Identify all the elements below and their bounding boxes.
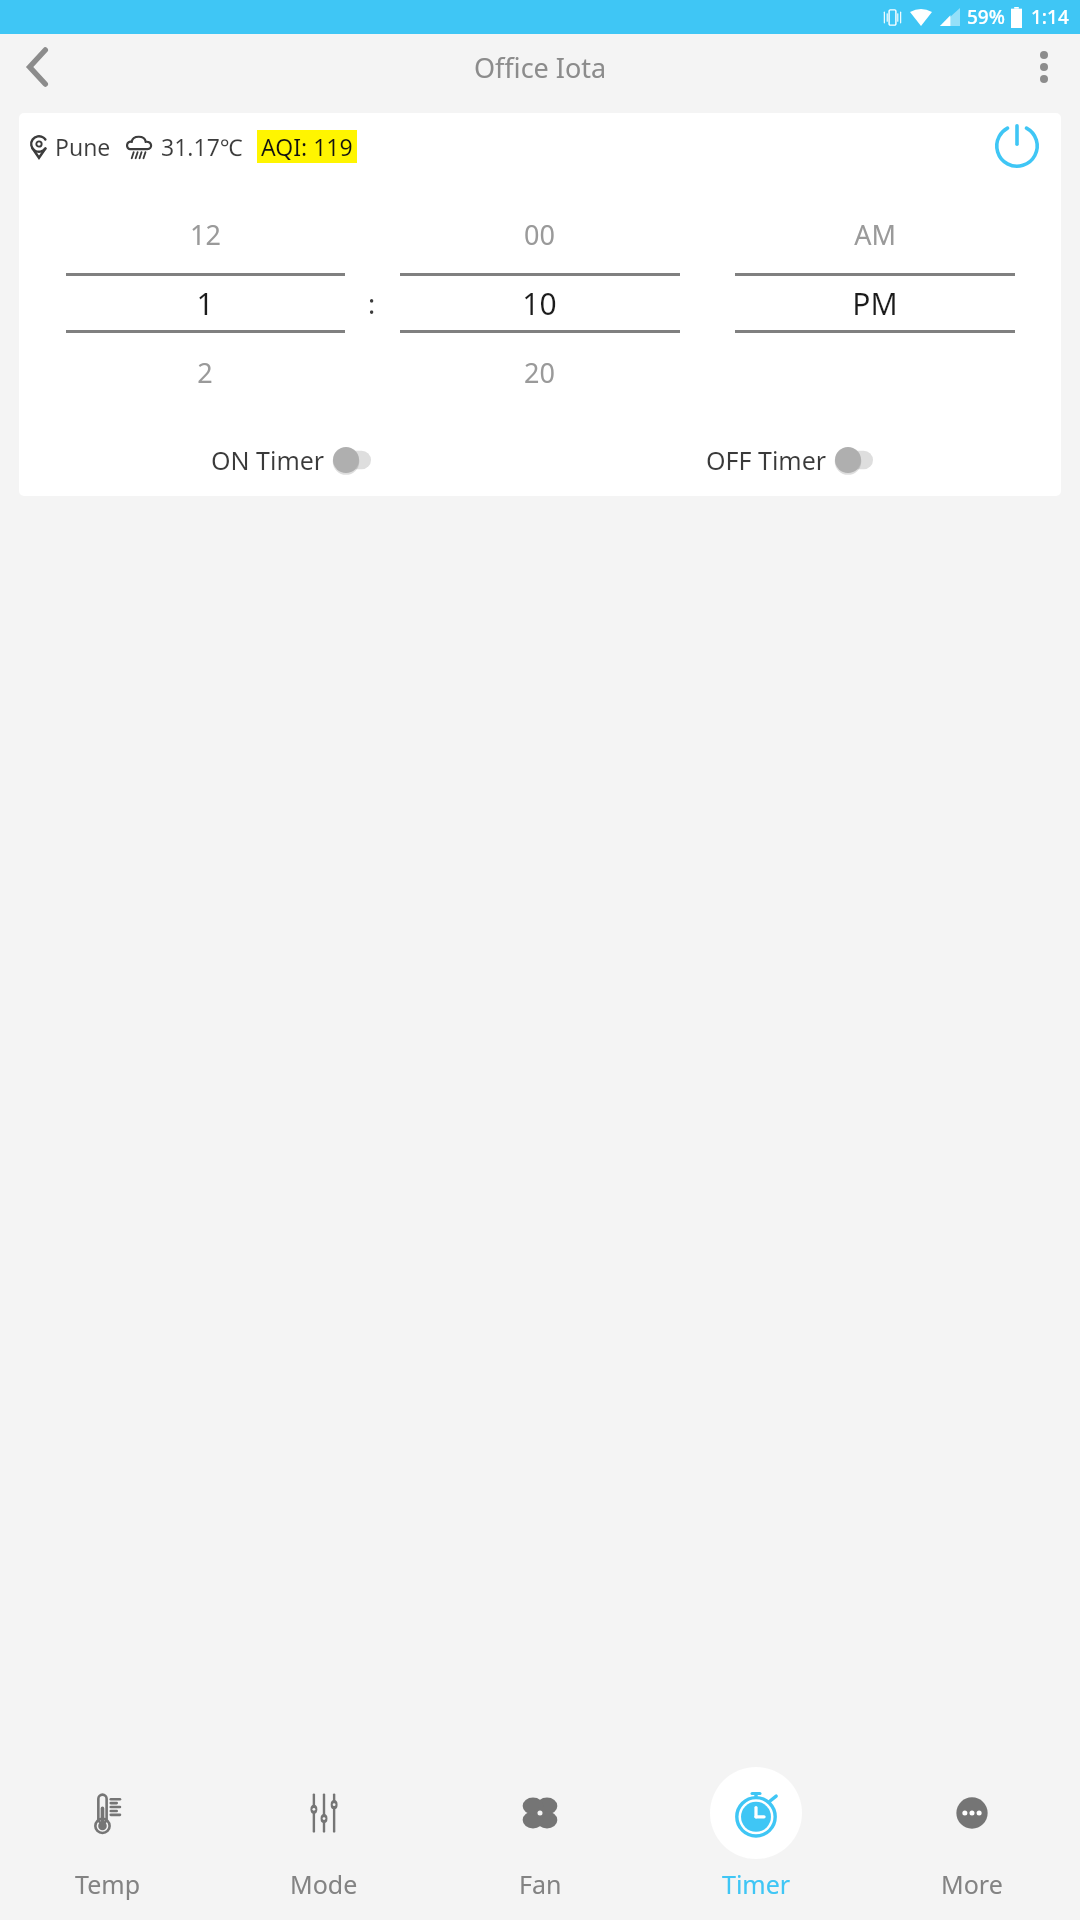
staticText: Mode (290, 1867, 358, 1901)
staticText: 00 (524, 216, 555, 253)
staticText: Fan (519, 1867, 562, 1901)
staticText: 59% (967, 4, 1005, 30)
staticText: 10 (522, 283, 557, 324)
button[interactable]: Mode (216, 1764, 432, 1904)
staticText: 20 (524, 354, 555, 391)
button[interactable]: Temp (0, 1764, 216, 1904)
staticText: OFF Timer (706, 443, 827, 477)
staticText: : (368, 285, 376, 322)
staticText: AM (854, 216, 896, 253)
button[interactable]: 12 (55, 211, 355, 395)
staticText: 1 (196, 283, 214, 324)
button[interactable]: 00 (389, 211, 690, 395)
button[interactable]: Timer (648, 1764, 864, 1904)
button[interactable]: OFF Timer (706, 443, 873, 477)
staticText: 12 (190, 216, 221, 253)
staticText: AQI: 119 (261, 131, 353, 162)
staticText: More (941, 1867, 1003, 1901)
staticText: Timer (722, 1867, 791, 1901)
button[interactable]: More options (1020, 43, 1068, 91)
button[interactable]: Back (14, 43, 62, 91)
staticText: Temp (75, 1867, 141, 1901)
button[interactable]: More (864, 1764, 1080, 1904)
staticText: 2 (197, 354, 213, 391)
button[interactable]: Fan (432, 1764, 648, 1904)
staticText: Pune (55, 131, 111, 162)
button[interactable]: ON Timer (211, 443, 371, 477)
button[interactable]: Power (989, 123, 1045, 169)
staticText: Office Iota (474, 49, 607, 86)
button[interactable]: AM (724, 211, 1025, 395)
staticText: 1:14 (1031, 4, 1069, 30)
staticText: PM (852, 283, 898, 324)
staticText: 31.17℃ (161, 131, 243, 162)
staticText: ON Timer (211, 443, 325, 477)
